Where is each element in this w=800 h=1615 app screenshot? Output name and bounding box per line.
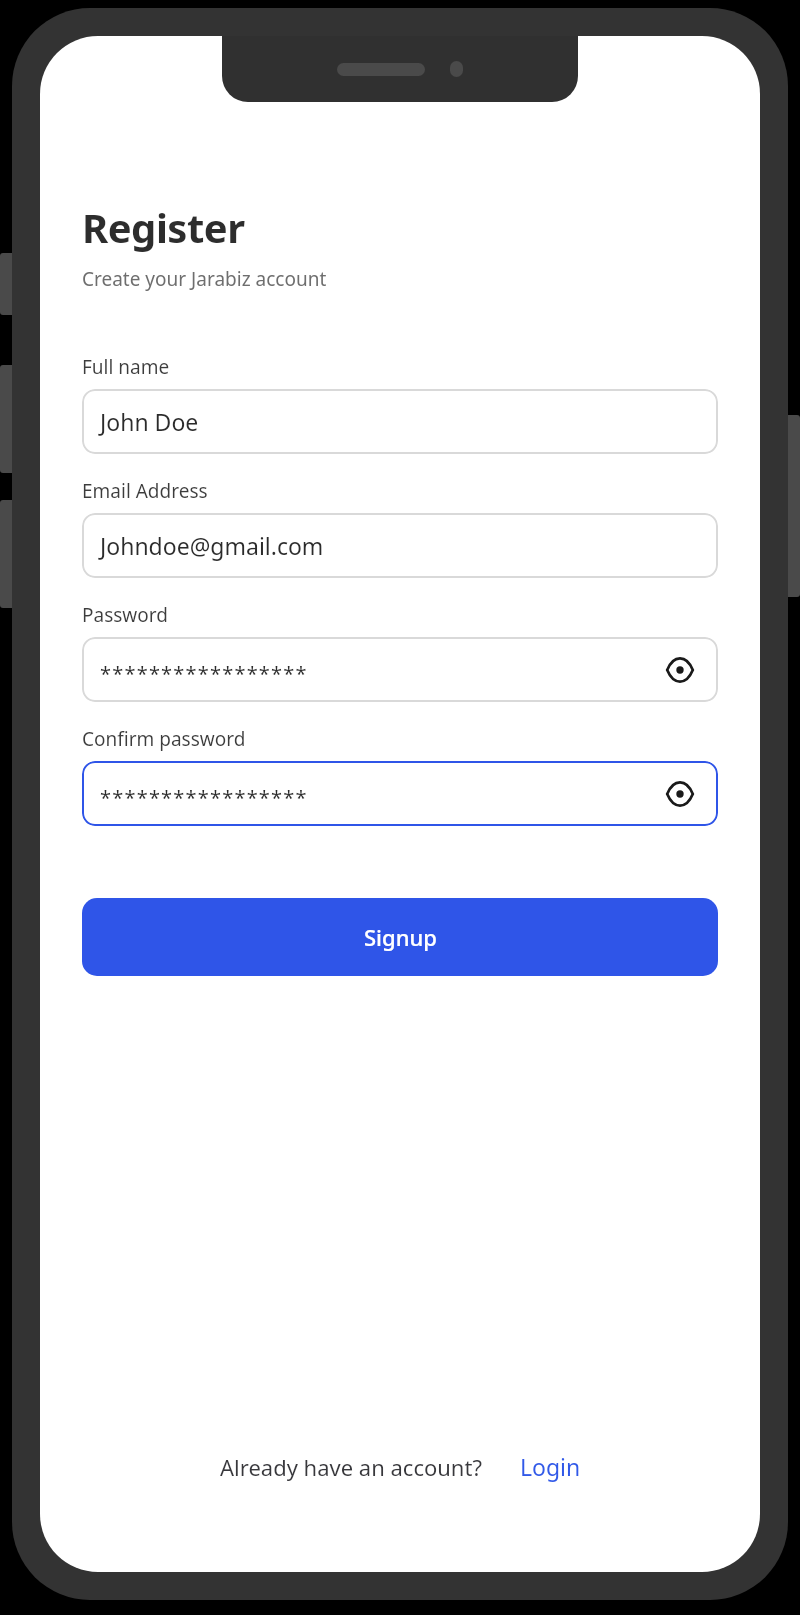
staticText: ***************** — [100, 784, 308, 811]
button[interactable]: ***************** — [82, 761, 718, 826]
staticText: Full name — [82, 354, 170, 380]
staticText: Email Address — [82, 478, 208, 504]
button[interactable]: John Doe — [82, 389, 718, 454]
button[interactable]: Johndoe@gmail.com — [82, 513, 718, 578]
button[interactable]: Toggle password visibility — [660, 650, 700, 690]
staticText: Login — [520, 1451, 581, 1482]
button[interactable]: Signup — [82, 898, 718, 976]
staticText: Password — [82, 602, 168, 628]
staticText: Register — [82, 200, 245, 254]
staticText: Create your Jarabiz account — [82, 266, 327, 292]
staticText: Johndoe@gmail.com — [100, 530, 324, 561]
staticText: ***************** — [100, 660, 308, 687]
staticText: John Doe — [100, 406, 199, 437]
staticText: Signup — [364, 922, 437, 952]
staticText: Confirm password — [82, 726, 246, 752]
button[interactable]: ***************** — [82, 637, 718, 702]
button[interactable]: Toggle password visibility — [660, 774, 700, 814]
button[interactable]: Login — [520, 1451, 581, 1482]
staticText: Already have an account? — [220, 1452, 482, 1482]
